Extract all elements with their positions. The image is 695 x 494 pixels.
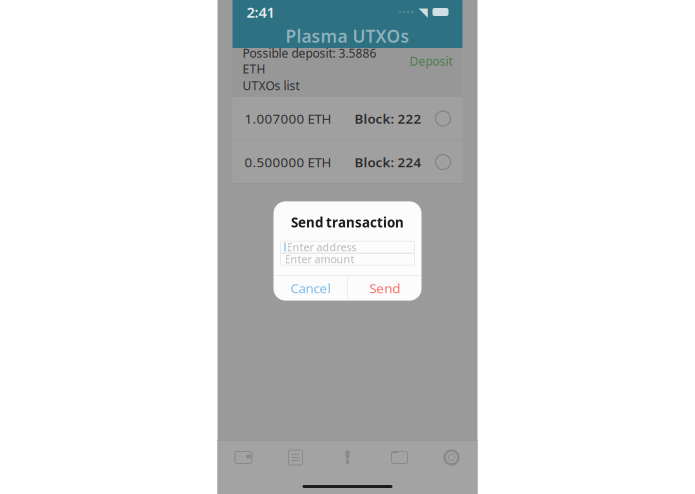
button[interactable]: Settings xyxy=(425,440,477,474)
button[interactable]: Transactions xyxy=(269,440,321,474)
button[interactable]: Ether xyxy=(321,440,373,474)
button[interactable]: Possible deposit: 3.5886 ETH xyxy=(232,48,462,74)
button[interactable]: Files xyxy=(373,440,425,474)
button[interactable]: 0.500000 ETH xyxy=(232,140,462,183)
button[interactable]: Wallet xyxy=(217,440,269,474)
staticText: 0.500000 ETH xyxy=(244,153,331,171)
staticText: Possible deposit: 3.5886 ETH xyxy=(242,45,376,77)
button[interactable]: Cancel xyxy=(273,276,347,301)
staticText: Send xyxy=(369,279,400,297)
staticText: Block: 224 xyxy=(354,153,421,171)
staticText: Cancel xyxy=(290,279,330,297)
button[interactable]: Send xyxy=(348,276,422,301)
button[interactable]: 1.007000 ETH xyxy=(232,97,462,140)
staticText: ◥ xyxy=(418,5,427,19)
staticText: Enter amount xyxy=(284,252,354,266)
staticText: Block: 222 xyxy=(354,110,421,127)
staticText: Enter address xyxy=(286,240,356,254)
staticText: UTXOs list xyxy=(242,77,299,93)
staticText: 2:41 xyxy=(246,2,274,22)
staticText: Plasma UTXOs xyxy=(285,24,409,47)
staticText: Send transaction xyxy=(291,213,404,231)
staticText: 1.007000 ETH xyxy=(244,110,331,127)
staticText: Deposit xyxy=(409,53,452,69)
